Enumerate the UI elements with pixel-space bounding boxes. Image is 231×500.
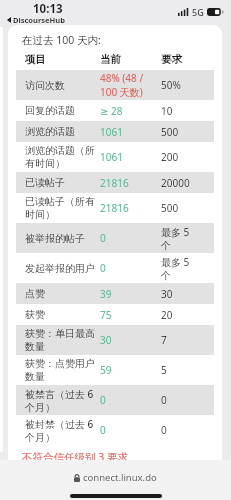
button[interactable]: 已读帖子 — [20, 172, 210, 193]
button[interactable]: DiscourseHub — [7, 15, 65, 25]
staticText: 获赞 — [25, 308, 45, 321]
staticText: 获赞：单日最高 数量 — [25, 327, 95, 353]
staticText: 0 — [100, 261, 106, 275]
button[interactable]: 浏览的话题（所 有时间） — [20, 142, 210, 172]
staticText: 回复的话题 — [25, 104, 75, 117]
staticText: 20000 — [161, 176, 190, 190]
staticText: 1061 — [100, 125, 123, 139]
staticText: 50% — [161, 78, 181, 92]
staticText: 39 — [100, 287, 112, 301]
staticText: 最多 5 个 — [161, 225, 190, 252]
other: Cellular signal — [178, 8, 189, 16]
staticText: 最多 5 个 — [161, 255, 190, 282]
staticText: connect.linux.do — [83, 471, 157, 484]
staticText: 浏览的话题（所 有时间） — [25, 144, 95, 170]
staticText: 7 — [161, 333, 167, 347]
button[interactable]: 点赞 — [20, 283, 210, 304]
other: Secure connection — [74, 474, 80, 482]
staticText: 75 — [100, 308, 112, 322]
staticText: 被举报的帖子 — [25, 232, 85, 245]
staticText: 30 — [100, 333, 112, 347]
staticText: 获赞：点赞用户 数量 — [25, 357, 95, 383]
button[interactable]: 获赞 — [20, 304, 210, 325]
staticText: 发起举报的用户 — [25, 262, 95, 275]
button[interactable]: 获赞：点赞用户 数量 — [20, 355, 210, 385]
staticText: 500 — [161, 125, 179, 139]
staticText: 要求 — [161, 53, 182, 66]
button[interactable]: 已读帖子（所有 时间） — [20, 193, 210, 223]
staticText: 点赞 — [25, 287, 45, 300]
staticText: 1061 — [100, 150, 123, 164]
staticText: 20 — [161, 308, 173, 322]
staticText: DiscourseHub — [13, 15, 65, 25]
staticText: ≥ 28 — [100, 104, 123, 118]
button[interactable]: 访问次数 — [20, 70, 210, 100]
staticText: 0 — [161, 393, 167, 407]
staticText: 200 — [161, 150, 179, 164]
staticText: 0 — [161, 423, 167, 437]
staticText: 48% (48 / 100 天数) — [100, 71, 144, 99]
staticText: 21816 — [100, 176, 129, 190]
staticText: 10 — [161, 104, 173, 118]
staticText: 500 — [161, 201, 179, 215]
staticText: 30 — [161, 287, 173, 301]
staticText: 10:13 — [33, 1, 63, 17]
staticText: 0 — [100, 423, 106, 437]
staticText: 5G — [192, 6, 204, 18]
staticText: 不符合信任级别 3 要求。 — [22, 450, 139, 460]
button[interactable]: 被禁言（过去 6 个月） — [20, 385, 210, 415]
staticText: 5 — [161, 363, 167, 377]
staticText: 访问次数 — [25, 79, 65, 92]
button[interactable]: 浏览的话题 — [20, 121, 210, 142]
button[interactable]: 回复的话题 — [20, 100, 210, 121]
button[interactable]: 获赞：单日最高 数量 — [20, 325, 210, 355]
staticText: 被封禁（过去 6 个月） — [25, 417, 94, 444]
button[interactable]: 发起举报的用户 — [20, 253, 210, 283]
staticText: 已读帖子 — [25, 176, 65, 189]
button[interactable]: 被举报的帖子 — [20, 223, 210, 253]
staticText: 59 — [100, 363, 112, 377]
button[interactable]: Secure connection — [74, 471, 157, 484]
staticText: 0 — [100, 393, 106, 407]
staticText: 浏览的话题 — [25, 125, 75, 138]
staticText: 21816 — [100, 201, 129, 215]
button[interactable]: 被封禁（过去 6 个月） — [20, 415, 210, 445]
other: Battery — [207, 8, 223, 16]
staticText: 被禁言（过去 6 个月） — [25, 387, 94, 414]
staticText: 0 — [100, 231, 106, 245]
staticText: 项目 — [25, 53, 46, 66]
staticText: 已读帖子（所有 时间） — [25, 195, 95, 221]
staticText: 在过去 100 天内: — [22, 33, 101, 47]
staticText: 当前 — [100, 53, 121, 66]
